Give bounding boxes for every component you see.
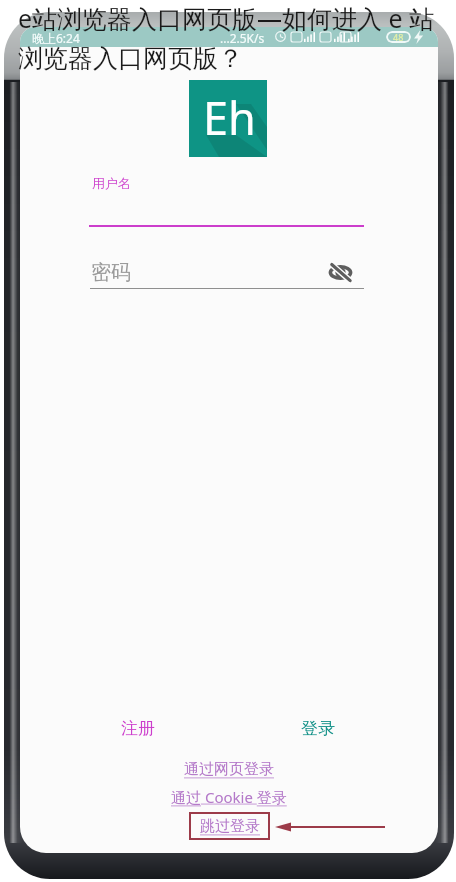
staticText: 浏览器入口网页版？ xyxy=(18,43,243,74)
staticText: Eh xyxy=(203,87,256,148)
staticText: 跳过登录 xyxy=(200,817,260,836)
button[interactable]: Show password xyxy=(327,260,353,284)
button[interactable]: 跳过登录 xyxy=(189,812,270,840)
staticText: 密码 xyxy=(91,260,131,285)
staticText: ...2.5K/s xyxy=(220,30,265,46)
button[interactable]: 登录 xyxy=(301,718,335,739)
staticText: 用户名 xyxy=(92,175,131,191)
staticText: 48 xyxy=(393,31,404,43)
button[interactable]: 通过 Cookie 登录 xyxy=(171,787,287,807)
staticText: e站浏览器入口网页版—如何进入 e 站 xyxy=(18,1,435,35)
staticText: 晚上6:24 xyxy=(32,30,80,46)
button[interactable]: 通过网页登录 xyxy=(184,760,274,779)
button[interactable]: 注册 xyxy=(121,718,155,739)
